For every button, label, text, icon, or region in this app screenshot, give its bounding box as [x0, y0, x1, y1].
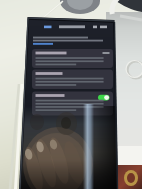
button[interactable]: Phone battery settings screen photo: [0, 0, 142, 189]
